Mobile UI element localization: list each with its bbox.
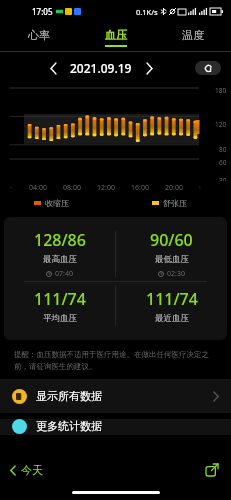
staticText: 收缩压 [45, 198, 69, 208]
button[interactable]: 111/74 [116, 282, 227, 330]
staticText: 12:00 [97, 183, 115, 193]
staticText: 128/86 [34, 229, 86, 251]
staticText: 04:00 [29, 183, 47, 193]
staticText: 温度 [182, 28, 204, 42]
staticText: 08:00 [63, 183, 81, 193]
staticText: 120 [215, 120, 227, 129]
staticText: 20:00 [165, 183, 183, 193]
staticText: 111/74 [146, 288, 198, 310]
button[interactable]: Previous day [44, 59, 62, 77]
staticText: 更多统计数据 [36, 419, 102, 433]
button[interactable]: Next day [140, 59, 158, 77]
staticText: 最高血压 [43, 254, 77, 265]
button[interactable]: 90/60 [116, 227, 227, 281]
staticText: 16:00 [131, 183, 149, 193]
button[interactable]: 更多统计数据 [0, 419, 231, 435]
button[interactable]: 心率 [0, 22, 77, 52]
staticText: 02:30 [167, 269, 185, 279]
staticText: 提醒：血压数据不适用于医疗用途。在做出任何医疗决定之前，请征询医生的建议。 [14, 350, 217, 371]
staticText: 180 [215, 86, 227, 95]
staticText: 显示所有数据 [36, 389, 102, 403]
button[interactable]: 111/74 [4, 282, 115, 330]
button[interactable]: 今天 [10, 463, 43, 477]
staticText: 90/60 [150, 229, 193, 251]
staticText: 最近血压 [155, 313, 189, 324]
staticText: 60 [219, 158, 227, 167]
staticText: 今天 [21, 463, 43, 477]
button[interactable]: 显示所有数据 [0, 379, 231, 413]
staticText: 平均血压 [43, 313, 77, 324]
staticText: · [10, 183, 12, 193]
staticText: 07:40 [55, 269, 73, 279]
button[interactable]: 128/86 [4, 227, 115, 281]
staticText: 血压 [105, 28, 127, 42]
button[interactable]: Share [203, 461, 221, 479]
button[interactable]: 血压 [77, 22, 154, 52]
staticText: 80 [219, 145, 227, 154]
staticText: 舒张压 [163, 198, 187, 208]
button[interactable]: 温度 [154, 22, 231, 52]
staticText: · [199, 183, 201, 193]
staticText: 30 [219, 176, 227, 181]
staticText: 0.1K/s [136, 7, 158, 17]
staticText: 最低血压 [155, 254, 189, 265]
button[interactable]: Refresh [195, 61, 221, 75]
staticText: 2021.09.19 [70, 60, 132, 76]
staticText: 111/74 [34, 288, 86, 310]
staticText: 17:05 [32, 6, 53, 17]
staticText: 心率 [28, 28, 50, 42]
